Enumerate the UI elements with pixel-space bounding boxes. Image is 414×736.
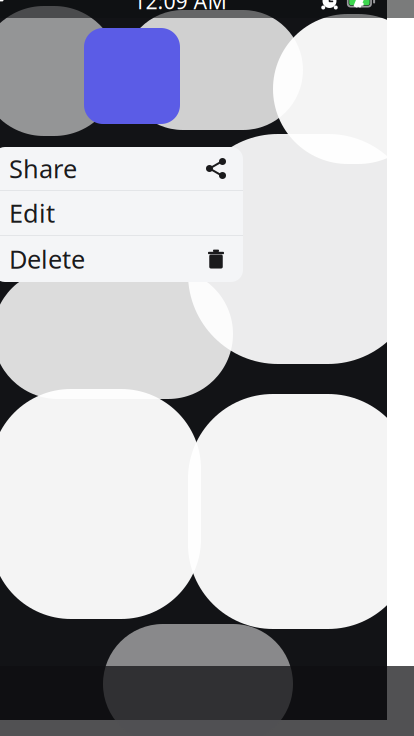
staticText: Edit (9, 196, 55, 230)
button[interactable]: Edit (0, 191, 243, 235)
staticText: Share (9, 152, 77, 185)
button[interactable]: Delete (0, 236, 243, 282)
staticText: Delete (9, 242, 85, 276)
staticText: 12:09 AM (133, 0, 226, 15)
button[interactable]: Share (0, 147, 243, 190)
